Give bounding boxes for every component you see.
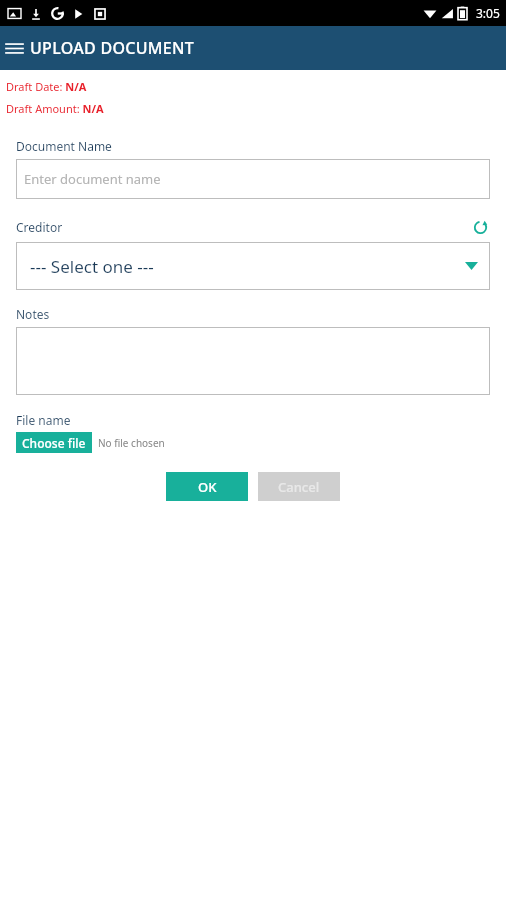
button[interactable]: Enter document name (16, 159, 490, 199)
button[interactable]: Refresh creditors (470, 217, 490, 237)
staticText: No file chosen (98, 436, 165, 450)
staticText: Creditor (16, 219, 63, 235)
staticText: File name (16, 412, 71, 428)
button[interactable]: OK (166, 472, 248, 501)
button[interactable]: --- Select one --- (16, 242, 490, 290)
staticText: Document Name (16, 138, 112, 154)
staticText: 3:05 (476, 5, 500, 21)
button[interactable] (16, 327, 490, 395)
staticText: Draft Amount: N/A (6, 101, 104, 116)
staticText: OK (198, 478, 217, 496)
button[interactable]: Open navigation menu (5, 38, 24, 59)
staticText: Notes (16, 306, 50, 322)
button[interactable]: Choose file (16, 432, 92, 453)
button[interactable]: Cancel (258, 472, 340, 501)
staticText: Cancel (278, 478, 320, 496)
staticText: Enter document name (24, 170, 161, 188)
staticText: UPLOAD DOCUMENT (30, 37, 195, 59)
staticText: --- Select one --- (30, 255, 154, 278)
staticText: Draft Date: N/A (6, 79, 87, 94)
staticText: Choose file (22, 435, 86, 451)
